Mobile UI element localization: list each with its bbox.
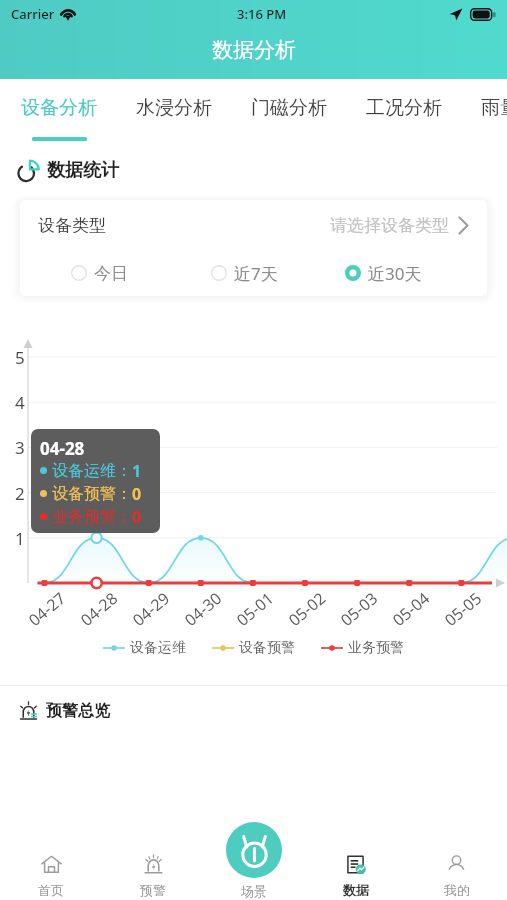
button[interactable]: 场景	[226, 822, 282, 878]
staticText: 设备预警	[239, 639, 295, 657]
button[interactable]: 设备运维	[103, 639, 186, 657]
staticText: 门磁分析	[251, 96, 327, 120]
staticText: 04-27	[24, 587, 70, 631]
staticText: 04-28	[40, 437, 85, 459]
staticText: 近30天	[368, 262, 422, 285]
staticText: 05-04	[388, 587, 434, 631]
button[interactable]: 工况分析	[364, 79, 444, 148]
staticText: 设备运维：	[52, 461, 132, 481]
staticText: 设备类型	[38, 215, 106, 236]
button[interactable]: 雨量分析	[479, 79, 507, 148]
staticText: 雨量分析	[481, 96, 507, 120]
button[interactable]: 数据	[305, 814, 406, 898]
staticText: 2	[15, 482, 25, 505]
button[interactable]: 今日	[71, 250, 128, 296]
staticText: 预警	[140, 882, 166, 898]
staticText: 4	[15, 391, 25, 414]
staticText: 1	[15, 527, 25, 550]
button[interactable]: 业务预警	[321, 639, 404, 657]
staticText: 设备运维	[130, 639, 186, 657]
staticText: 04-28	[76, 587, 122, 631]
button[interactable]: 设备预警	[212, 639, 295, 657]
staticText: 场景	[241, 883, 267, 899]
staticText: 数据分析	[212, 37, 296, 63]
staticText: 04-30	[180, 587, 226, 631]
staticText: 05-01	[232, 587, 278, 631]
staticText: 水浸分析	[136, 96, 212, 120]
staticText: 0	[132, 506, 142, 528]
staticText: 0	[132, 483, 142, 505]
staticText: 我的	[444, 882, 470, 898]
button[interactable]: 预警	[102, 814, 204, 898]
staticText: 工况分析	[366, 96, 442, 120]
staticText: 请选择设备类型	[330, 215, 449, 236]
staticText: 数据	[343, 882, 369, 898]
staticText: 05-05	[440, 587, 486, 631]
button[interactable]: 门磁分析	[249, 79, 329, 148]
staticText: 04-29	[128, 587, 174, 631]
button[interactable]: 预警总览	[18, 686, 507, 736]
staticText: Carrier	[11, 5, 55, 23]
button[interactable]: 水浸分析	[134, 79, 214, 148]
staticText: 首页	[38, 882, 64, 898]
button[interactable]: 首页	[0, 814, 102, 898]
staticText: 近7天	[234, 262, 278, 285]
staticText: 设备预警：	[52, 484, 132, 504]
staticText: 05-02	[284, 587, 330, 631]
staticText: 业务预警：	[52, 507, 132, 527]
staticText: 今日	[94, 263, 128, 284]
staticText: 预警总览	[46, 701, 110, 721]
staticText: 3:16 PM	[237, 5, 287, 23]
button[interactable]: 近30天	[345, 250, 422, 296]
staticText: 数据统计	[47, 159, 119, 182]
button[interactable]: 我的	[406, 814, 507, 898]
button[interactable]: 近7天	[211, 250, 278, 296]
staticText: 设备分析	[21, 96, 97, 120]
staticText: 3	[15, 436, 25, 459]
staticText: 1	[132, 460, 142, 482]
staticText: 05-03	[336, 587, 382, 631]
button[interactable]: 设备类型	[20, 200, 487, 250]
button[interactable]: 数据统计	[17, 148, 507, 192]
button[interactable]: 设备分析	[19, 79, 99, 148]
staticText: 业务预警	[348, 639, 404, 657]
staticText: 5	[15, 346, 25, 369]
